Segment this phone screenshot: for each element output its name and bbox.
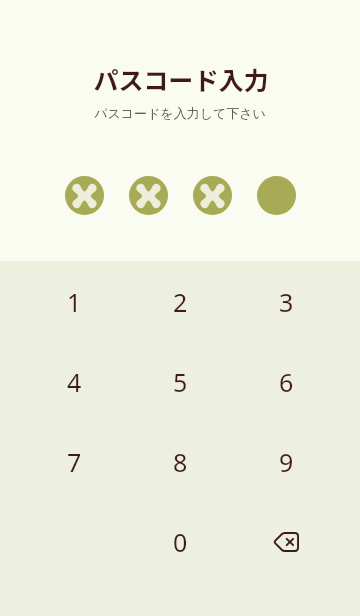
staticText: パスコード入力 — [93, 61, 269, 97]
button[interactable]: 2 — [127, 262, 233, 342]
button[interactable]: 1 — [21, 262, 127, 342]
staticText: 4 — [67, 365, 82, 399]
staticText: 2 — [173, 285, 188, 319]
staticText: 0 — [173, 525, 188, 559]
button[interactable]: 8 — [127, 422, 233, 502]
staticText: 5 — [173, 365, 188, 399]
staticText: 1 — [67, 285, 82, 319]
button[interactable]: Delete — [233, 502, 339, 582]
button[interactable]: 4 — [21, 342, 127, 422]
staticText: 3 — [279, 285, 294, 319]
staticText: 6 — [279, 365, 294, 399]
staticText: 8 — [173, 445, 188, 479]
button[interactable]: 5 — [127, 342, 233, 422]
staticText: 9 — [279, 445, 294, 479]
button[interactable]: 7 — [21, 422, 127, 502]
button[interactable]: 3 — [233, 262, 339, 342]
staticText: 7 — [67, 445, 82, 479]
button[interactable]: 0 — [127, 502, 233, 582]
button[interactable]: 9 — [233, 422, 339, 502]
button[interactable]: 6 — [233, 342, 339, 422]
other: Delete — [273, 532, 299, 552]
staticText: パスコードを入力して下さい — [94, 105, 266, 121]
